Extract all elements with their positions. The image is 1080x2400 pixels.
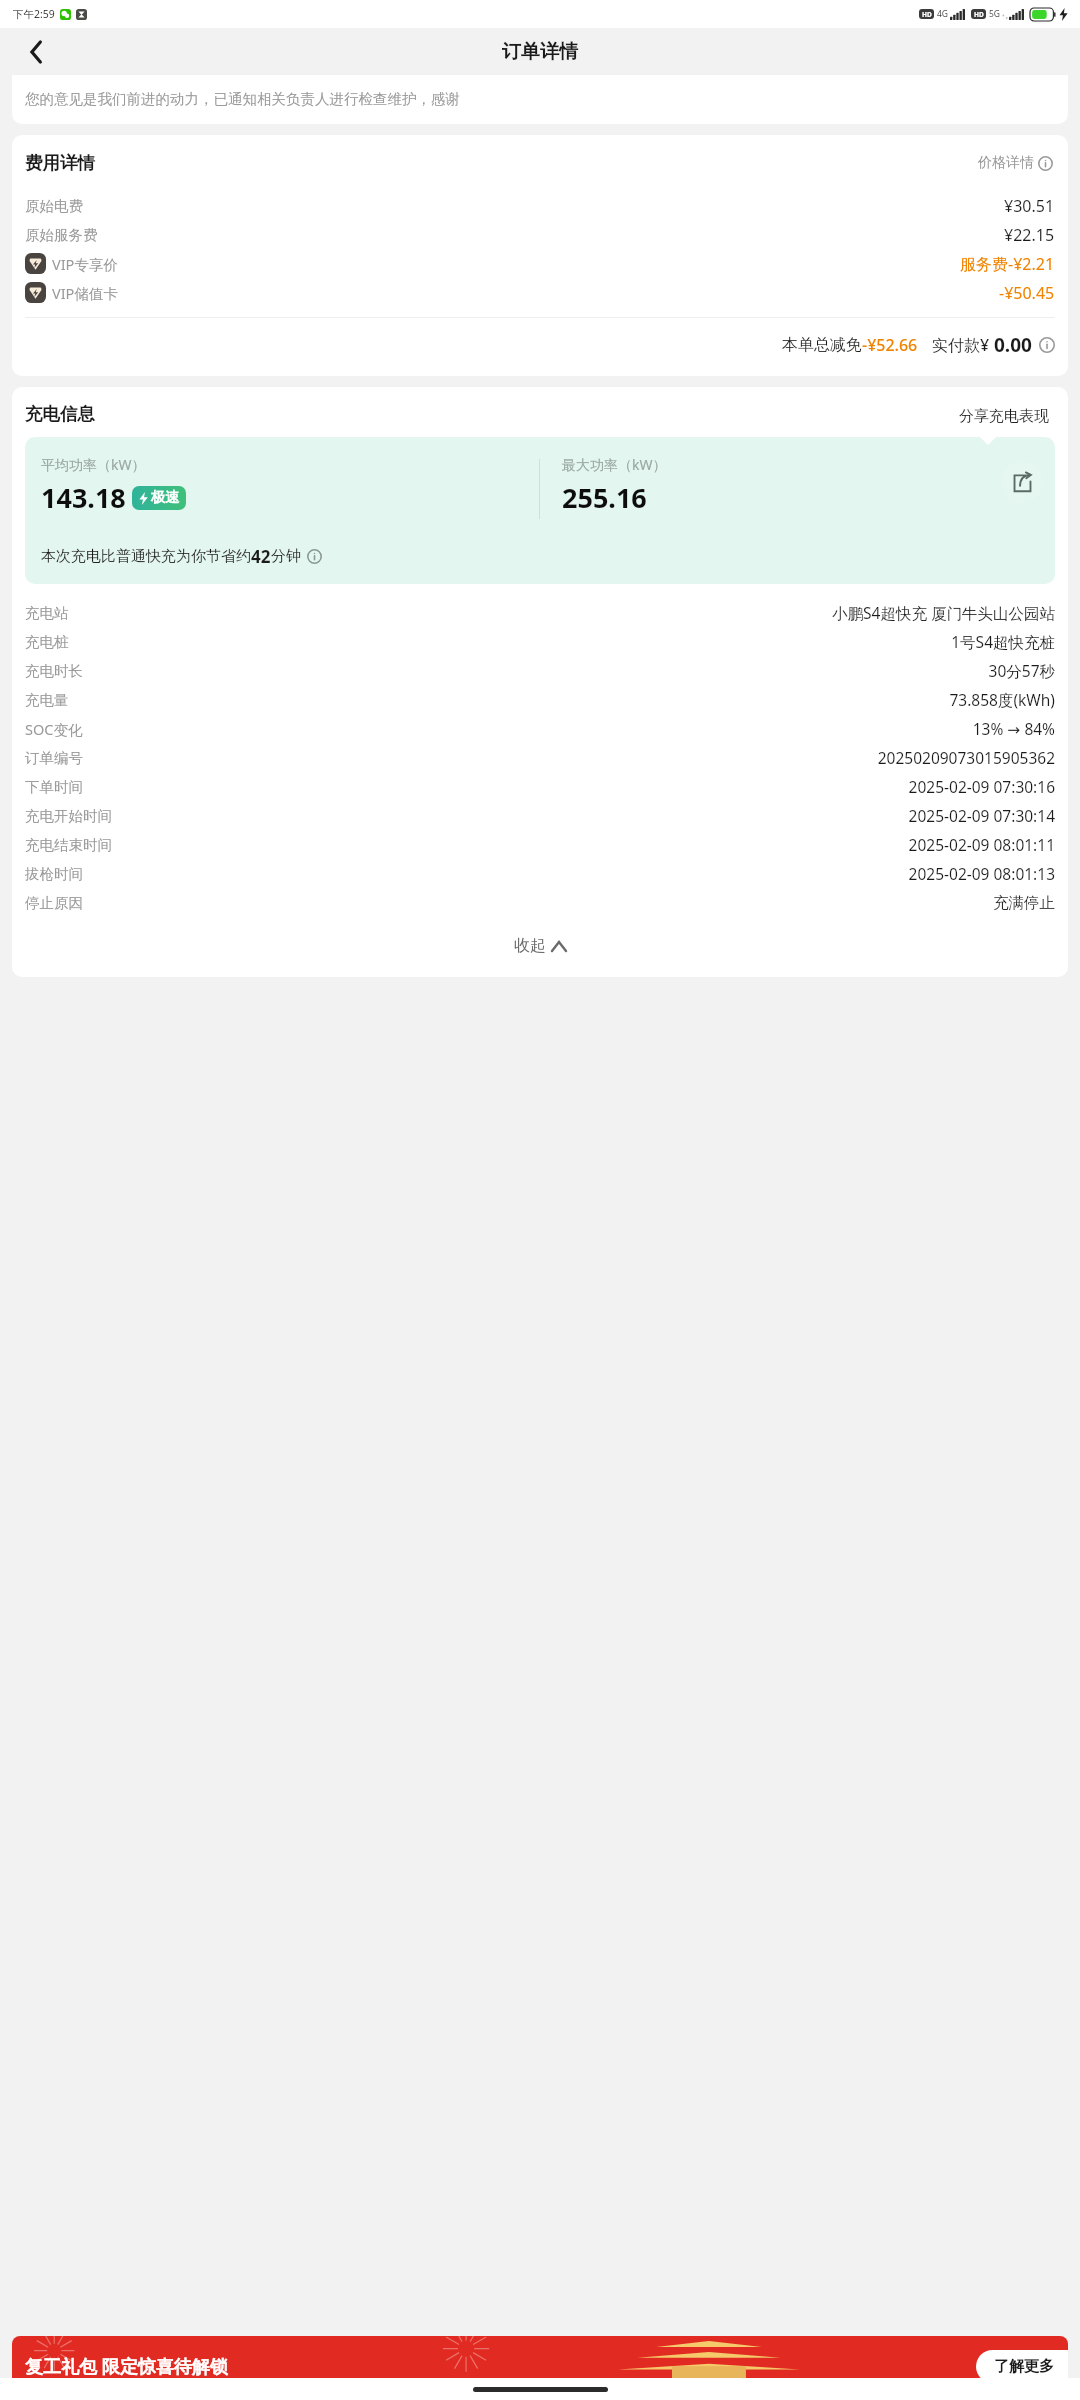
staticText: 了解更多 xyxy=(994,2357,1054,2376)
staticText: 充满停止 xyxy=(993,893,1055,913)
staticText: 收起 xyxy=(514,936,546,956)
staticText: 5G xyxy=(989,8,1001,20)
button[interactable]: 分享 xyxy=(1001,461,1043,503)
staticText: SOC变化 xyxy=(25,719,83,739)
staticText: 143.18 xyxy=(41,479,126,516)
staticText: HD xyxy=(922,10,932,19)
staticText: 服务费-¥2.21 xyxy=(960,253,1055,275)
staticText: 分钟 xyxy=(271,547,301,566)
staticText: 2025-02-09 07:30:14 xyxy=(908,805,1055,826)
staticText: 订单详情 xyxy=(502,40,578,64)
staticText: 本次充电比普通快充为你节省约 xyxy=(41,547,251,566)
staticText: 小鹏S4超快充 厦门牛头山公园站 xyxy=(832,602,1055,623)
staticText: -¥52.66 xyxy=(862,334,918,356)
staticText: 费用详情 xyxy=(25,152,95,174)
button[interactable]: 了解更多 xyxy=(976,2350,1068,2378)
staticText: VIP专享价 xyxy=(52,254,118,274)
staticText: 42 xyxy=(251,545,271,568)
button[interactable]: 分享充电表现 xyxy=(946,397,1062,436)
staticText: 2025-02-09 08:01:11 xyxy=(908,834,1055,855)
staticText: 充电信息 xyxy=(25,403,95,425)
staticText: 30分57秒 xyxy=(988,660,1055,681)
button[interactable]: 价格详情 xyxy=(976,151,1055,175)
staticText: 充电量 xyxy=(25,691,69,709)
button[interactable]: 收起 xyxy=(12,927,1068,965)
staticText: 0.00 xyxy=(994,332,1032,358)
staticText: VIP储值卡 xyxy=(52,283,118,303)
staticText: ¥30.51 xyxy=(1004,195,1055,217)
staticText: 充电站 xyxy=(25,604,69,622)
button[interactable]: 复工礼包 限定惊喜待解锁 xyxy=(12,2336,1068,2378)
staticText: 实付款¥ xyxy=(932,334,990,356)
staticText: 复工礼包 限定惊喜待解锁 xyxy=(25,2354,228,2378)
staticText: 原始电费 xyxy=(25,197,83,215)
staticText: 分享充电表现 xyxy=(959,407,1049,426)
staticText: 下午2:59 xyxy=(13,7,55,21)
staticText: 4G xyxy=(937,8,949,20)
staticText: 2025-02-09 08:01:13 xyxy=(908,863,1055,884)
staticText: 255.16 xyxy=(562,479,647,516)
staticText: 拔枪时间 xyxy=(25,865,83,883)
staticText: HD xyxy=(974,10,984,19)
staticText: 您的意见是我们前进的动力，已通知相关负责人进行检查维护，感谢 xyxy=(25,90,460,108)
staticText: 极速 xyxy=(151,489,179,507)
staticText: -¥50.45 xyxy=(999,282,1055,304)
staticText: 20250209073015905362 xyxy=(877,747,1055,768)
staticText: 充电结束时间 xyxy=(25,836,112,854)
staticText: 最大功率（kW） xyxy=(562,455,667,474)
staticText: 充电时长 xyxy=(25,662,83,680)
staticText: 价格详情 xyxy=(978,154,1034,172)
staticText: 原始服务费 xyxy=(25,226,98,244)
staticText: ¥22.15 xyxy=(1004,224,1055,246)
staticText: 13% → 84% xyxy=(972,718,1055,739)
staticText: 1号S4超快充桩 xyxy=(951,631,1055,652)
staticText: 平均功率（kW） xyxy=(41,455,146,474)
staticText: 73.858度(kWh) xyxy=(949,689,1055,710)
staticText: 下单时间 xyxy=(25,778,83,796)
staticText: 2025-02-09 07:30:16 xyxy=(908,776,1055,797)
staticText: 订单编号 xyxy=(25,749,83,767)
staticText: 停止原因 xyxy=(25,894,83,912)
button[interactable]: 返回 xyxy=(14,30,58,74)
staticText: 本单总减免 xyxy=(782,335,862,355)
staticText: 充电开始时间 xyxy=(25,807,112,825)
staticText: 充电桩 xyxy=(25,633,69,651)
